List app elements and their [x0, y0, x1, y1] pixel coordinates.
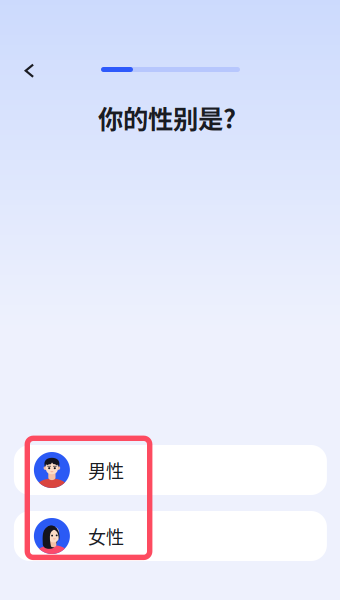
button[interactable]: 女性: [14, 511, 327, 561]
button[interactable]: Back: [11, 53, 47, 89]
staticText: 男性: [88, 457, 124, 483]
staticText: 女性: [88, 523, 124, 549]
staticText: 你的性别是?: [98, 99, 236, 136]
button[interactable]: 男性: [14, 445, 327, 495]
